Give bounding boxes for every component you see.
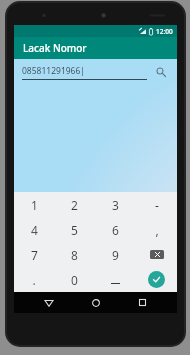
button[interactable] (95, 267, 136, 292)
button[interactable]: Home (84, 292, 108, 313)
staticText: 3 (112, 197, 119, 213)
button[interactable]: Back (37, 292, 61, 313)
button[interactable]: 8 (54, 242, 95, 267)
staticText: 8 (71, 247, 78, 263)
staticText: . (32, 272, 36, 288)
button[interactable]: 0 (54, 267, 95, 292)
staticText: 9 (112, 247, 119, 263)
staticText: 5 (71, 222, 78, 238)
staticText: 1 (31, 197, 38, 213)
button[interactable]: 5 (54, 217, 95, 242)
button[interactable]: 6 (95, 217, 136, 242)
staticText: 4 (31, 222, 38, 238)
button[interactable]: - (136, 192, 177, 217)
button[interactable]: . (14, 267, 54, 292)
staticText: , (155, 222, 159, 238)
button[interactable]: 9 (95, 242, 136, 267)
button[interactable]: 7 (14, 242, 54, 267)
button[interactable]: Recents (130, 292, 154, 313)
staticText: 7 (31, 247, 38, 263)
button[interactable]: 1 (14, 192, 54, 217)
button[interactable]: 4 (14, 217, 54, 242)
staticText: 0 (71, 272, 78, 288)
button[interactable]: Done (136, 267, 177, 292)
staticText: - (155, 197, 159, 213)
button[interactable]: Search (153, 64, 169, 80)
button[interactable]: 3 (95, 192, 136, 217)
staticText: 6 (112, 222, 119, 238)
button[interactable]: 2 (54, 192, 95, 217)
staticText: 12:00 (156, 27, 173, 36)
staticText: 085811291966| (22, 65, 86, 77)
button[interactable]: Backspace (136, 242, 177, 267)
staticText: Lacak Nomor (23, 41, 87, 55)
staticText: 2 (71, 197, 78, 213)
button[interactable]: , (136, 217, 177, 242)
